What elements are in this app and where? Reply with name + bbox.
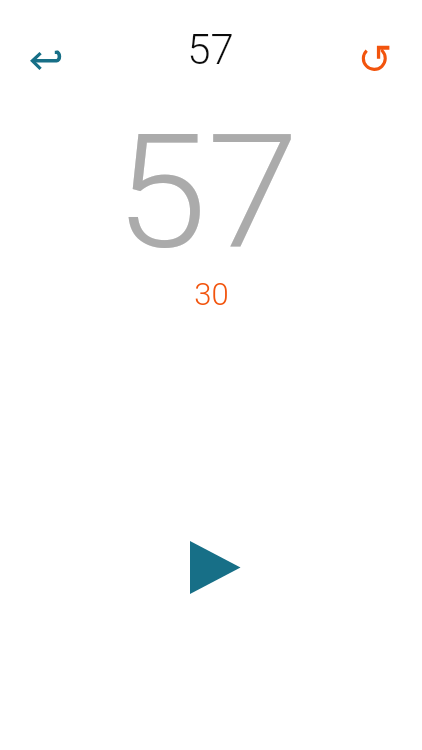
button[interactable]: Back	[22, 36, 70, 84]
staticText: 57	[115, 99, 299, 284]
staticText: 30	[194, 276, 229, 312]
staticText: 57	[187, 25, 234, 74]
button[interactable]: Reset	[350, 35, 398, 83]
button[interactable]: Start timer	[175, 526, 257, 608]
